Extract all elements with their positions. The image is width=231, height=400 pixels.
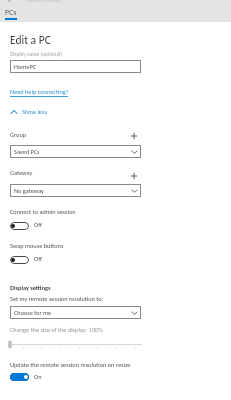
staticText: Update the remote session resolution on … (10, 361, 131, 369)
staticText: Display name (optional) (10, 51, 62, 58)
button[interactable] (3, 6, 21, 21)
staticText: On (34, 373, 42, 381)
button[interactable]: Off (10, 256, 29, 264)
staticText: Set my remote session resolution to: (10, 295, 104, 303)
staticText: Gateway (10, 169, 33, 177)
staticText: PCs (5, 8, 17, 18)
staticText: Show less (22, 108, 47, 116)
staticText: Connect to admin session (10, 208, 76, 216)
staticText: Off (34, 255, 42, 263)
button[interactable]: No gateway (10, 184, 141, 197)
button[interactable]: Choose for me (10, 306, 141, 319)
staticText: HomePC (14, 63, 37, 71)
staticText: Edit a PC (10, 33, 51, 47)
staticText: Choose for me (14, 309, 52, 317)
staticText: Need help connecting? (10, 88, 69, 96)
button[interactable]: Off (10, 222, 29, 230)
staticText: Remote Desktop (26, 0, 60, 3)
button[interactable] (10, 86, 70, 97)
button[interactable]: Back (4, 0, 15, 3)
staticText: Display settings (10, 284, 51, 292)
button[interactable]: On (10, 373, 29, 381)
staticText: Saved PCs (14, 148, 40, 156)
staticText: Off (34, 221, 42, 229)
button[interactable]: Display size slider (8, 339, 143, 350)
button[interactable] (9, 105, 57, 117)
staticText: No gateway (14, 187, 44, 195)
button[interactable]: Add gateway (128, 170, 140, 182)
button[interactable]: Add group (128, 130, 140, 142)
staticText: Change the size of the display: 100% (10, 326, 103, 334)
button[interactable]: Saved PCs (10, 145, 141, 158)
staticText: Group (10, 131, 27, 139)
staticText: Swap mouse buttons (10, 242, 64, 250)
button[interactable]: HomePC (10, 60, 141, 73)
